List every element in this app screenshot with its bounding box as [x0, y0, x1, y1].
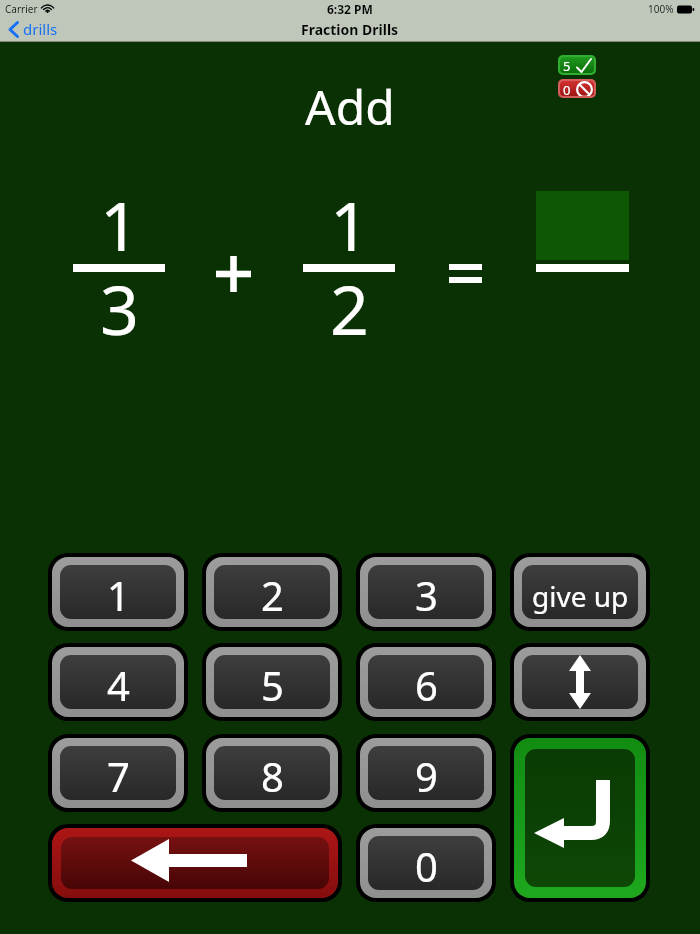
button[interactable] [510, 643, 650, 721]
button[interactable]: 6 [356, 643, 496, 721]
button[interactable]: drills [8, 19, 58, 39]
staticText: 8 [261, 749, 284, 800]
staticText: 1 [107, 568, 130, 619]
staticText: 7 [107, 749, 130, 800]
staticText: 5 [563, 57, 571, 73]
button[interactable]: 4 [48, 643, 188, 721]
staticText: 100% [648, 2, 674, 16]
staticText: 9 [415, 749, 438, 800]
button[interactable]: 3 [356, 553, 496, 631]
button[interactable]: give up [510, 553, 650, 631]
button[interactable] [510, 734, 650, 902]
staticText: 4 [107, 658, 130, 709]
button[interactable]: 1 [48, 553, 188, 631]
button[interactable]: 5 [202, 643, 342, 721]
button[interactable] [48, 824, 342, 902]
button[interactable]: 8 [202, 734, 342, 812]
staticText: 1 [330, 178, 369, 258]
staticText: 3 [415, 568, 438, 619]
staticText: 2 [261, 568, 284, 619]
staticText: 0 [563, 81, 571, 96]
staticText: drills [23, 19, 58, 39]
staticText: 3 [100, 262, 139, 342]
staticText: 6:32 PM [327, 1, 373, 17]
button[interactable]: 2 [202, 553, 342, 631]
staticText: 1 [100, 178, 139, 258]
staticText: 0 [415, 839, 438, 890]
staticText: give up [532, 577, 629, 615]
staticText: 6 [415, 658, 438, 709]
button[interactable]: 9 [356, 734, 496, 812]
staticText: 5 [261, 658, 284, 709]
staticText: Fraction Drills [301, 20, 399, 39]
button[interactable]: 0 [356, 824, 496, 902]
button[interactable]: 7 [48, 734, 188, 812]
staticText: 2 [330, 262, 369, 342]
staticText: Carrier [5, 2, 38, 16]
staticText: Add [305, 74, 395, 134]
